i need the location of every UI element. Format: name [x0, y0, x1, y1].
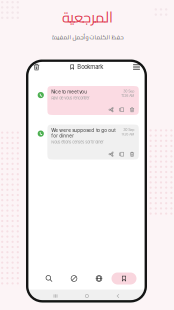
button[interactable]: Copy [119, 152, 124, 156]
staticText: المرجعية [61, 3, 112, 31]
button[interactable]: Delete all [30, 60, 43, 73]
staticText: حفظ الكلمات وأجمل المفيدة [51, 32, 123, 43]
button[interactable]: Share [109, 107, 113, 112]
button[interactable]: Delete [130, 107, 134, 112]
button[interactable]: We were supposed to go out for dinner [47, 124, 139, 159]
button[interactable]: Translate [61, 272, 86, 284]
staticText: We were supposed to go out for dinner [51, 127, 115, 138]
staticText: 30 Sep [123, 89, 134, 93]
staticText: 30 Sep [123, 127, 134, 132]
button[interactable]: Copy [119, 107, 124, 112]
button[interactable]: Delete [130, 152, 134, 156]
button[interactable]: Search [36, 272, 61, 284]
button[interactable]: Languages [86, 272, 111, 284]
staticText: Nice to meet you [51, 89, 87, 94]
staticText: 11:26 AM [121, 132, 134, 136]
button[interactable]: Nice to meet you [47, 86, 139, 115]
staticText: Nous étions censés sortir dîner [51, 140, 103, 144]
staticText: Bookmark [77, 63, 103, 70]
button[interactable]: Menu [130, 60, 143, 73]
button[interactable]: Share [109, 152, 113, 156]
button[interactable]: Bookmarks [111, 272, 136, 284]
button[interactable]: Bookmark [68, 61, 105, 72]
staticText: 11:26 AM [121, 94, 134, 98]
staticText: Ravi de vous rencontrer [51, 96, 89, 100]
